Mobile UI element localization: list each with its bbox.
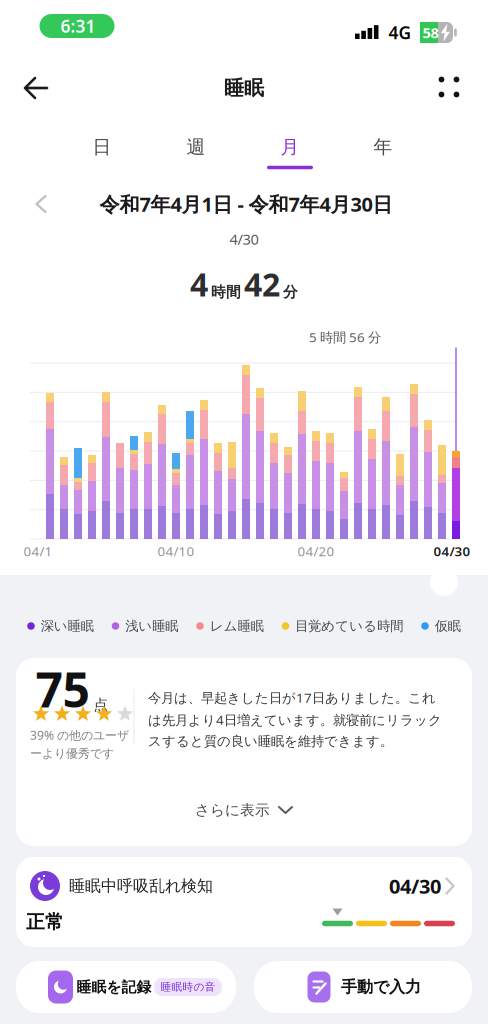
- staticText: 6:31: [60, 14, 95, 37]
- staticText: 点: [93, 696, 108, 714]
- button[interactable]: 手動で入力: [254, 961, 472, 1013]
- staticText: 75: [35, 657, 89, 721]
- staticText: 42: [244, 263, 280, 305]
- button[interactable]: 睡眠中呼吸乱れ検知: [16, 857, 472, 947]
- staticText: 04/30: [389, 873, 441, 899]
- staticText: 睡眠を記録: [76, 978, 151, 996]
- staticText: 睡眠中呼吸乱れ検知: [69, 876, 213, 896]
- staticText: 週: [186, 135, 205, 158]
- staticText: 正常: [26, 910, 64, 933]
- button[interactable]: 戻る: [13, 64, 59, 112]
- staticText: 5 時間 56 分: [309, 328, 381, 346]
- staticText: 浅い睡眠: [125, 618, 178, 634]
- staticText: 04/1: [23, 542, 52, 560]
- button[interactable]: 前の月: [26, 186, 55, 222]
- button[interactable]: 年: [359, 127, 406, 166]
- staticText: 年: [373, 135, 392, 158]
- staticText: 4G: [388, 21, 411, 44]
- staticText: レム睡眠: [210, 618, 264, 634]
- staticText: 令和7年4月1日 - 令和7年4月30日: [99, 191, 392, 217]
- button[interactable]: 週: [172, 127, 219, 166]
- staticText: 04/30: [433, 542, 470, 560]
- staticText: 58: [422, 23, 438, 42]
- staticText: 時間: [211, 283, 241, 301]
- button[interactable]: 日: [78, 127, 125, 166]
- staticText: 深い睡眠: [41, 618, 94, 634]
- staticText: 睡眠時の音: [160, 980, 215, 993]
- staticText: 仮眠: [435, 618, 461, 634]
- button[interactable]: 月: [266, 127, 313, 166]
- staticText: 月: [280, 135, 299, 158]
- staticText: 日: [92, 135, 111, 158]
- staticText: 04/20: [297, 542, 334, 560]
- staticText: 睡眠: [224, 76, 264, 100]
- staticText: 39% の他のユーザ ーより優秀です: [30, 727, 129, 761]
- staticText: 4: [190, 263, 208, 305]
- button[interactable]: さらに表示: [183, 793, 305, 827]
- staticText: 今月は、早起きした日が17日ありました。これ は先月より4日増えています。就寝前…: [148, 689, 442, 749]
- button[interactable]: その他: [425, 63, 472, 110]
- staticText: 手動で入力: [341, 977, 421, 997]
- staticText: 04/10: [157, 542, 194, 560]
- staticText: 4/30: [229, 229, 258, 249]
- staticText: 分: [283, 283, 298, 301]
- staticText: 目覚めている時間: [295, 618, 403, 634]
- staticText: さらに表示: [195, 801, 270, 819]
- button[interactable]: 睡眠を記録: [16, 961, 236, 1013]
